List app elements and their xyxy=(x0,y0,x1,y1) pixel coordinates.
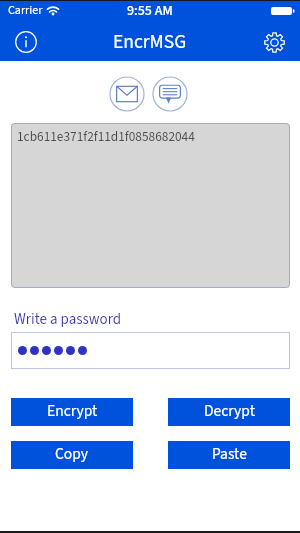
button[interactable]: Send by email xyxy=(109,76,145,112)
staticText: Write a password xyxy=(14,309,122,330)
button[interactable]: Info xyxy=(11,27,41,57)
staticText: 1cb611e371f2f11d1f0858682044 xyxy=(17,127,195,146)
staticText: Carrier xyxy=(8,2,43,19)
staticText: Decrypt xyxy=(204,400,255,422)
staticText: 9:55 AM xyxy=(127,1,173,21)
button[interactable]: Paste xyxy=(168,441,290,469)
button[interactable]: Encrypt xyxy=(11,398,133,426)
staticText: Copy xyxy=(55,443,89,465)
button[interactable]: Copy xyxy=(11,441,133,469)
staticText: Encrypt xyxy=(47,400,98,422)
button[interactable]: Decrypt xyxy=(168,398,290,426)
button[interactable]: Send by message xyxy=(152,76,188,112)
button[interactable]: 1cb611e371f2f11d1f0858682044 xyxy=(11,123,290,288)
button[interactable]: Settings xyxy=(259,27,289,57)
staticText: EncrMSG xyxy=(113,28,187,56)
staticText: Paste xyxy=(212,443,247,465)
button[interactable] xyxy=(11,332,290,369)
